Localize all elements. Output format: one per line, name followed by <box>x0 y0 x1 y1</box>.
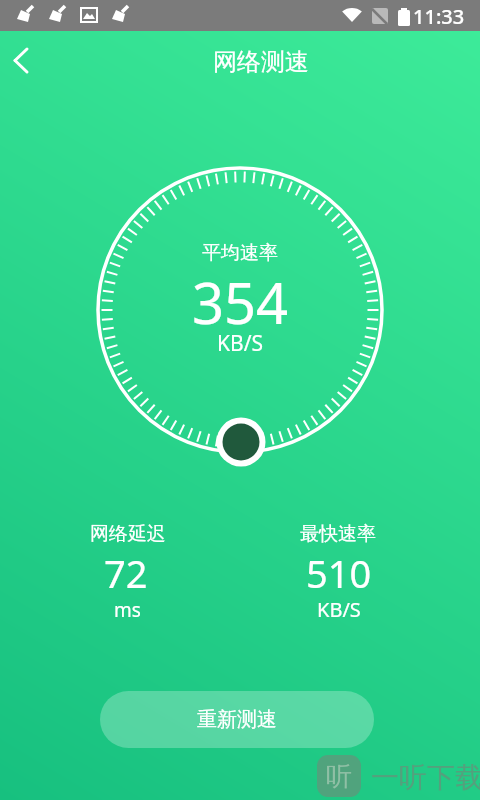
staticText: 网络测速 <box>213 47 309 77</box>
staticText: 72 <box>104 547 148 599</box>
staticText: 510 <box>306 547 372 599</box>
staticText: 重新测速 <box>197 707 277 732</box>
staticText: 11:33 <box>413 3 465 30</box>
staticText: ms <box>114 597 141 623</box>
staticText: 354 <box>192 264 289 340</box>
staticText: 平均速率 <box>202 241 278 265</box>
staticText: KB/S <box>317 596 361 623</box>
staticText: 网络延迟 <box>90 522 166 546</box>
button[interactable]: 重新测速 <box>100 691 374 748</box>
staticText: 一听下载 <box>371 760 480 795</box>
staticText: KB/S <box>217 329 263 358</box>
staticText: 最快速率 <box>300 522 376 546</box>
button[interactable] <box>0 39 43 83</box>
staticText: 听 <box>326 760 352 793</box>
